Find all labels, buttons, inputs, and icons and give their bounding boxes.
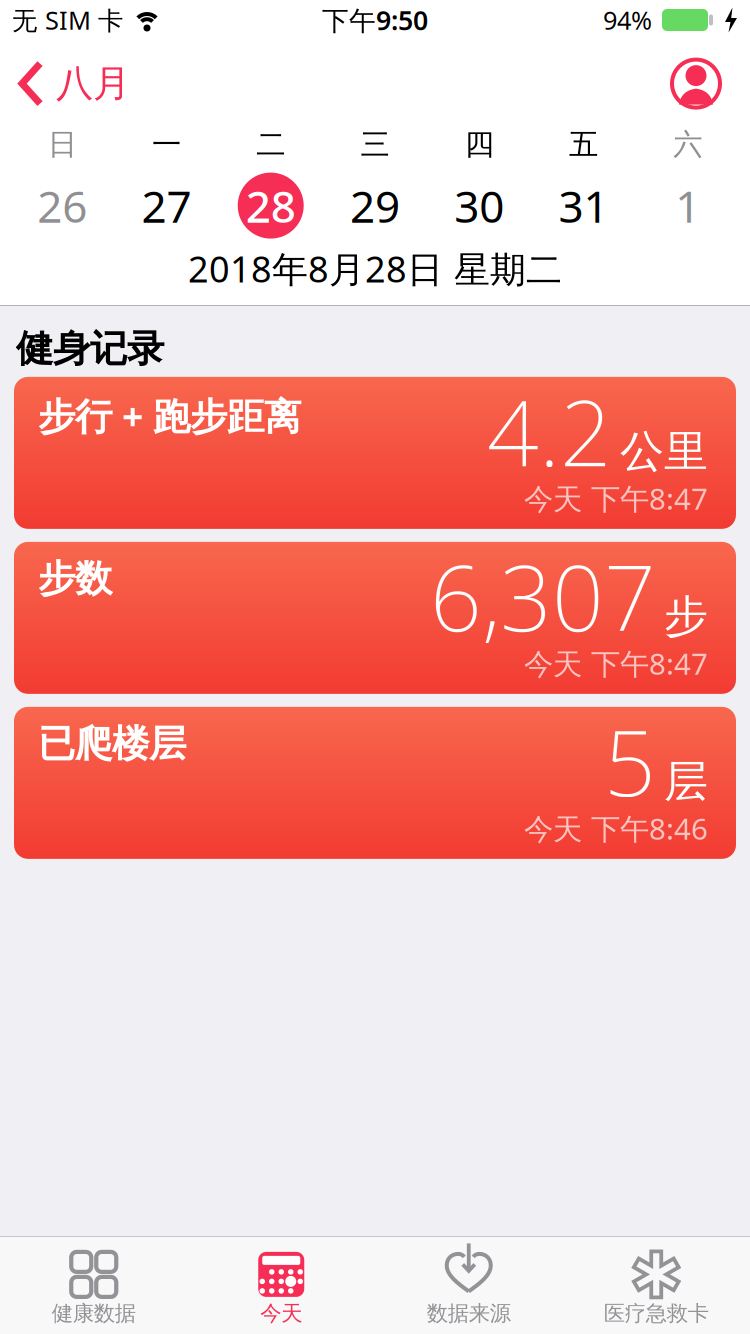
staticText: 今天 下午8:47 <box>524 479 708 518</box>
button[interactable]: 8月1日 <box>636 176 740 235</box>
staticText: 步数 <box>38 556 112 602</box>
staticText: 医疗急救卡 <box>604 1300 709 1327</box>
staticText: 二 <box>256 127 285 163</box>
staticText: 今天 下午8:47 <box>524 644 708 683</box>
staticText: 94% <box>603 3 652 37</box>
button[interactable]: 已爬楼层 <box>14 707 736 859</box>
staticText: 4.2 <box>487 371 612 491</box>
button[interactable]: 8月31日 <box>531 176 636 235</box>
staticText: 公里 <box>620 425 708 479</box>
staticText: 数据来源 <box>427 1300 511 1327</box>
staticText: 1 <box>675 176 700 235</box>
staticText: 2018年8月28日 星期二 <box>188 245 562 292</box>
staticText: 步 <box>664 590 708 644</box>
staticText: 今天 下午8:46 <box>524 809 708 848</box>
staticText: 层 <box>664 755 708 809</box>
button[interactable]: 个人资料 <box>672 60 750 108</box>
staticText: 日 <box>48 127 77 163</box>
staticText: 27 <box>141 176 191 235</box>
staticText: 30 <box>454 176 504 235</box>
staticText: 步行 + 跑步距离 <box>38 391 301 440</box>
button[interactable]: 医疗急救卡 <box>562 1244 750 1327</box>
button[interactable]: 8月27日 <box>114 176 219 235</box>
staticText: 31 <box>559 176 609 235</box>
staticText: 八月 <box>56 61 130 107</box>
staticText: 健康数据 <box>52 1300 136 1327</box>
staticText: 健身记录 <box>16 326 164 372</box>
staticText: 6,307 <box>430 536 656 656</box>
staticText: 三 <box>360 127 389 163</box>
staticText: 26 <box>37 176 87 235</box>
staticText: 28 <box>246 176 296 235</box>
staticText: 无 SIM 卡 <box>12 3 123 37</box>
button[interactable]: 8月28日 <box>219 173 323 239</box>
staticText: 已爬楼层 <box>38 721 186 767</box>
staticText: 今天 <box>260 1300 302 1327</box>
staticText: 29 <box>350 176 400 235</box>
button[interactable]: 健康数据 <box>0 1244 187 1327</box>
button[interactable]: 步数 <box>14 542 736 694</box>
staticText: 六 <box>673 127 702 163</box>
staticText: 四 <box>465 127 494 163</box>
staticText: 5 <box>604 701 656 821</box>
button[interactable]: 8月29日 <box>323 176 427 235</box>
staticText: 下午9:50 <box>322 2 428 38</box>
button[interactable]: 返回 八月 <box>0 61 130 107</box>
staticText: 五 <box>569 127 598 163</box>
button[interactable]: 今天 <box>187 1244 375 1327</box>
staticText: 一 <box>152 127 181 163</box>
button[interactable]: 8月30日 <box>427 176 531 235</box>
button[interactable]: 步行 + 跑步距离 <box>14 377 736 529</box>
button[interactable]: 8月26日 <box>10 176 114 235</box>
button[interactable]: 数据来源 <box>375 1244 562 1327</box>
